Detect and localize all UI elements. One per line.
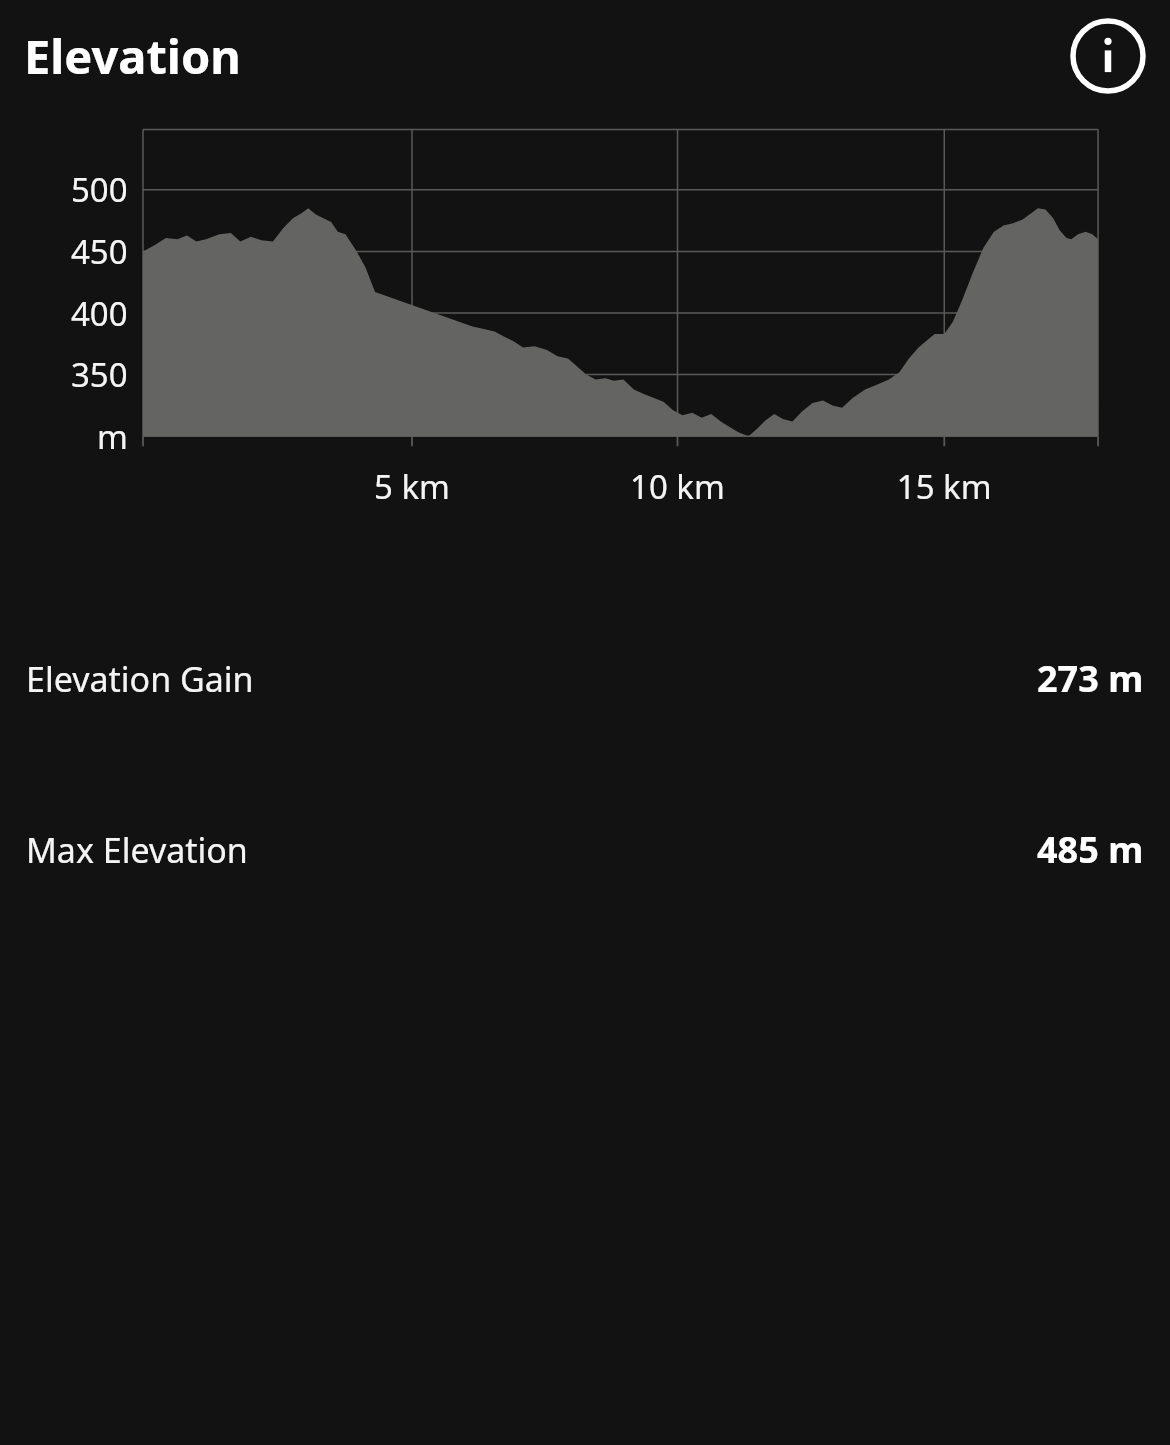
staticText: Elevation xyxy=(24,24,1070,88)
button[interactable]: Info xyxy=(1070,18,1146,94)
button[interactable]: Elevation Gain xyxy=(0,648,1170,709)
staticText: Elevation Gain xyxy=(26,656,254,702)
button[interactable]: Max Elevation xyxy=(0,819,1170,880)
staticText: 485 m xyxy=(1037,825,1144,874)
staticText: Max Elevation xyxy=(26,827,248,873)
staticText: 273 m xyxy=(1037,654,1144,703)
